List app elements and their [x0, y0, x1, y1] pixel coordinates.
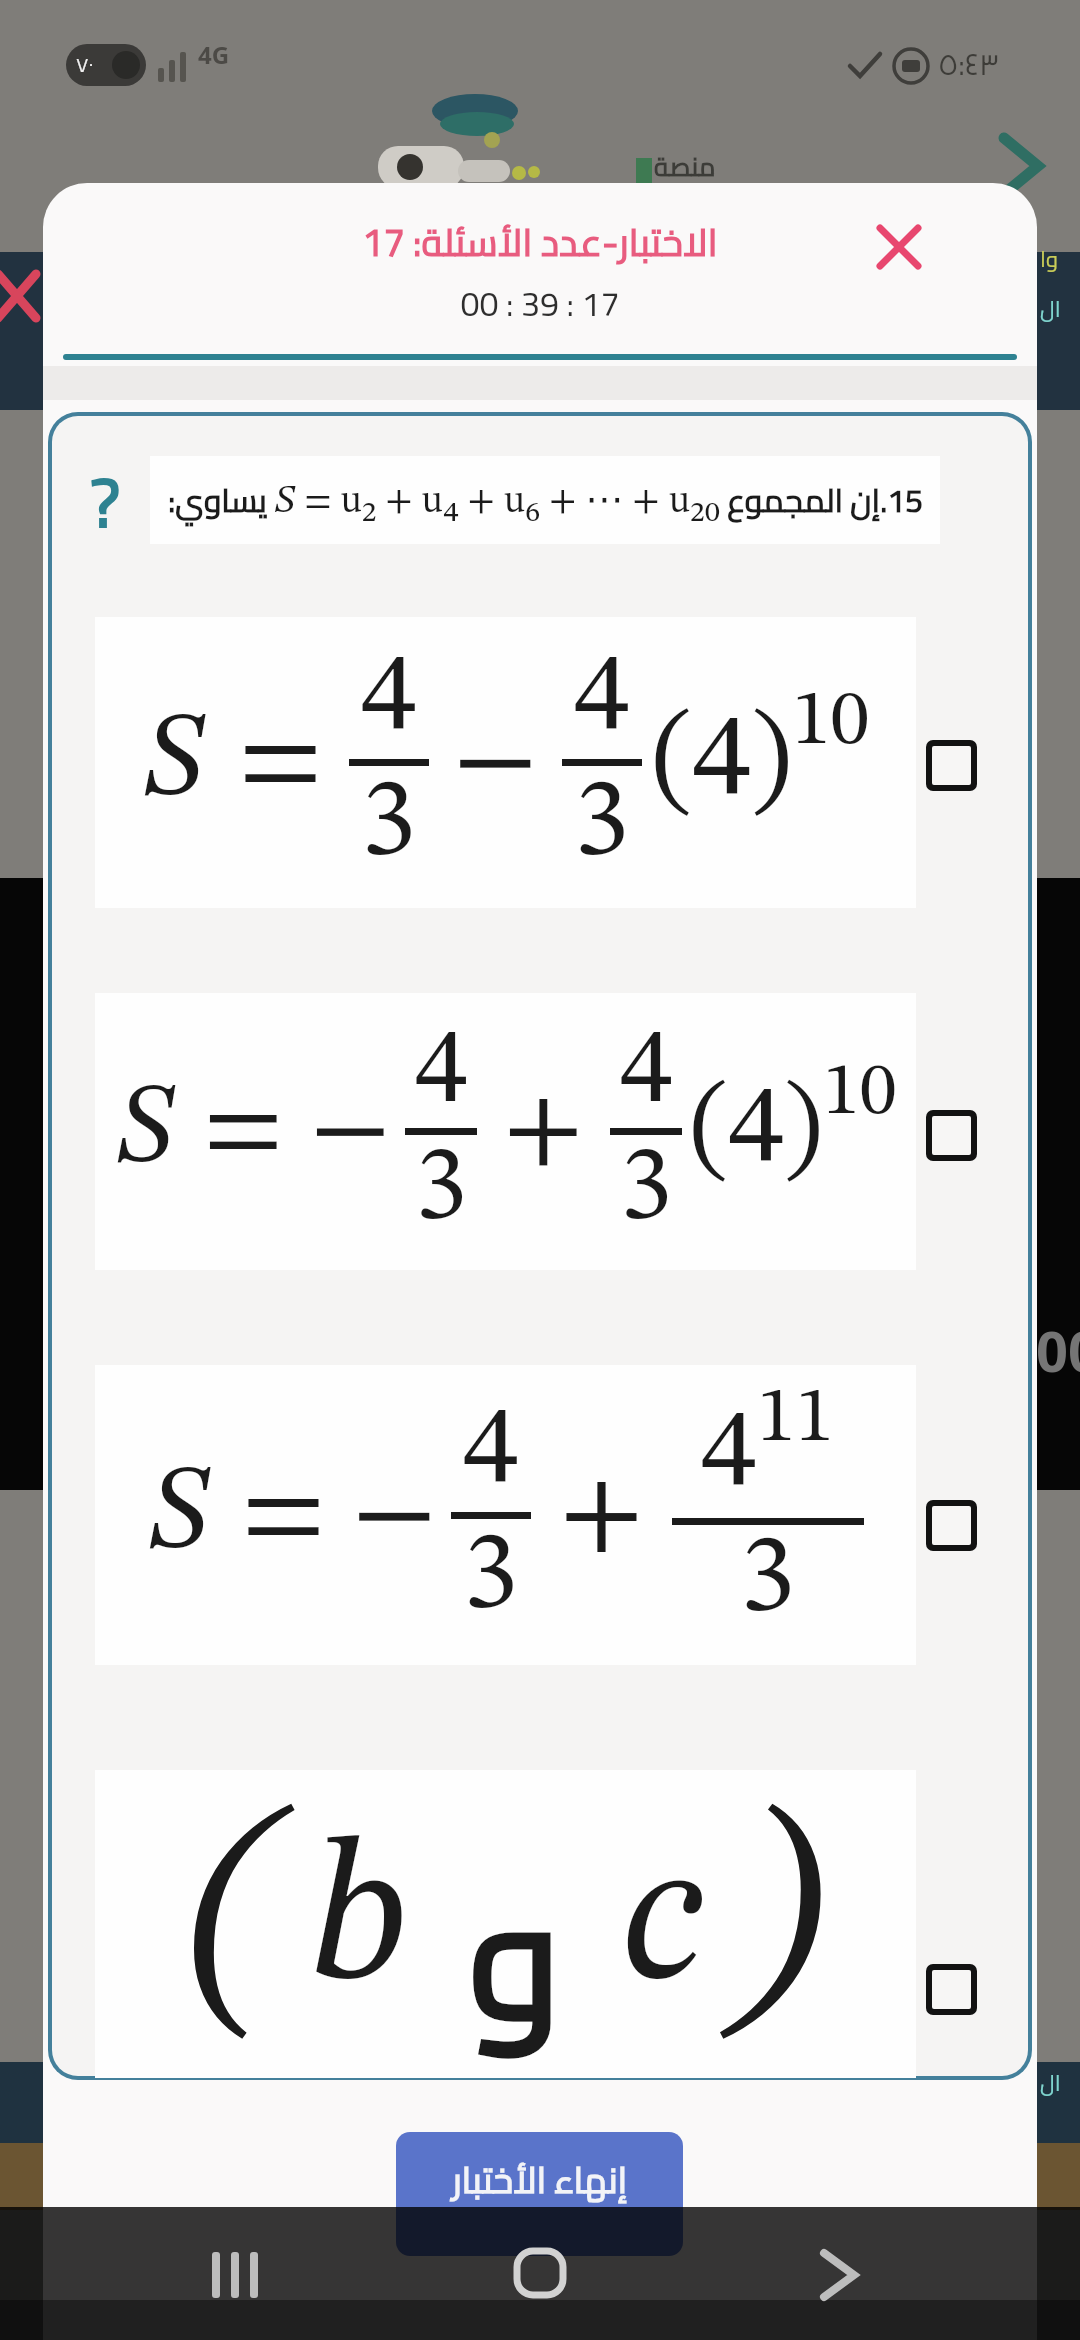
button[interactable]: (: [95, 1770, 916, 2078]
staticText: 4: [361, 644, 417, 756]
staticText: −: [310, 1076, 391, 1188]
button[interactable]: S: [95, 617, 916, 908]
staticText: 4: [574, 644, 630, 756]
staticText: ال: [1040, 2062, 1061, 2103]
staticText: 10: [792, 684, 870, 762]
button[interactable]: S: [95, 993, 916, 1270]
staticText: −: [453, 704, 538, 822]
staticText: +: [503, 1076, 584, 1188]
staticText: (4): [690, 1076, 823, 1188]
staticText: 4: [463, 1397, 519, 1509]
staticText: 11: [757, 1381, 835, 1459]
staticText: ال: [1040, 288, 1061, 329]
staticText: +: [559, 1457, 644, 1575]
staticText: 3: [463, 1522, 519, 1634]
button[interactable]: إنهاء الأختبار: [396, 2132, 683, 2256]
staticText: =: [203, 1076, 284, 1188]
staticText: منصة: [654, 142, 716, 191]
button[interactable]: [926, 740, 977, 791]
staticText: 10: [823, 1057, 897, 1131]
staticText: ٧٠: [76, 46, 94, 83]
staticText: 3: [361, 769, 417, 881]
button[interactable]: [926, 1500, 977, 1551]
staticText: 4: [701, 1400, 757, 1512]
staticText: 15.إن المجموع S = u₂ + u₄ + u₆ + ⋯ + u₂₀…: [168, 470, 923, 530]
staticText: 4: [620, 1020, 673, 1126]
staticText: c: [621, 1824, 703, 2024]
staticText: 3: [620, 1137, 673, 1243]
staticText: ٥:٤٣: [938, 36, 1000, 92]
button[interactable]: [505, 2238, 575, 2308]
staticText: وا: [1040, 238, 1058, 279]
staticText: b: [309, 1824, 409, 2024]
staticText: إنهاء الأختبار: [452, 2146, 628, 2213]
staticText: (4): [652, 704, 792, 822]
staticText: 4: [415, 1020, 468, 1126]
staticText: 00 : 39 : 17: [143, 272, 937, 336]
staticText: الاختبار-عدد الأسئلة: 17: [143, 206, 937, 277]
button[interactable]: [800, 2238, 880, 2308]
staticText: 00: [1036, 1312, 1080, 1388]
staticText: S: [142, 704, 206, 822]
staticText: ?: [90, 438, 121, 565]
staticText: =: [238, 704, 323, 822]
button[interactable]: [926, 1964, 977, 2015]
staticText: ): [737, 1795, 825, 2053]
staticText: =: [241, 1457, 326, 1575]
button[interactable]: S: [95, 1365, 916, 1665]
staticText: 3: [574, 769, 630, 881]
staticText: −: [352, 1457, 437, 1575]
staticText: 4G: [198, 38, 230, 71]
staticText: (: [187, 1795, 275, 2053]
staticText: 3: [415, 1137, 468, 1243]
staticText: S: [147, 1457, 211, 1575]
button[interactable]: [196, 2240, 276, 2310]
button[interactable]: [868, 218, 928, 278]
staticText: و: [469, 1800, 561, 2108]
button[interactable]: [926, 1110, 977, 1161]
staticText: S: [115, 1076, 175, 1188]
staticText: 3: [740, 1525, 796, 1637]
